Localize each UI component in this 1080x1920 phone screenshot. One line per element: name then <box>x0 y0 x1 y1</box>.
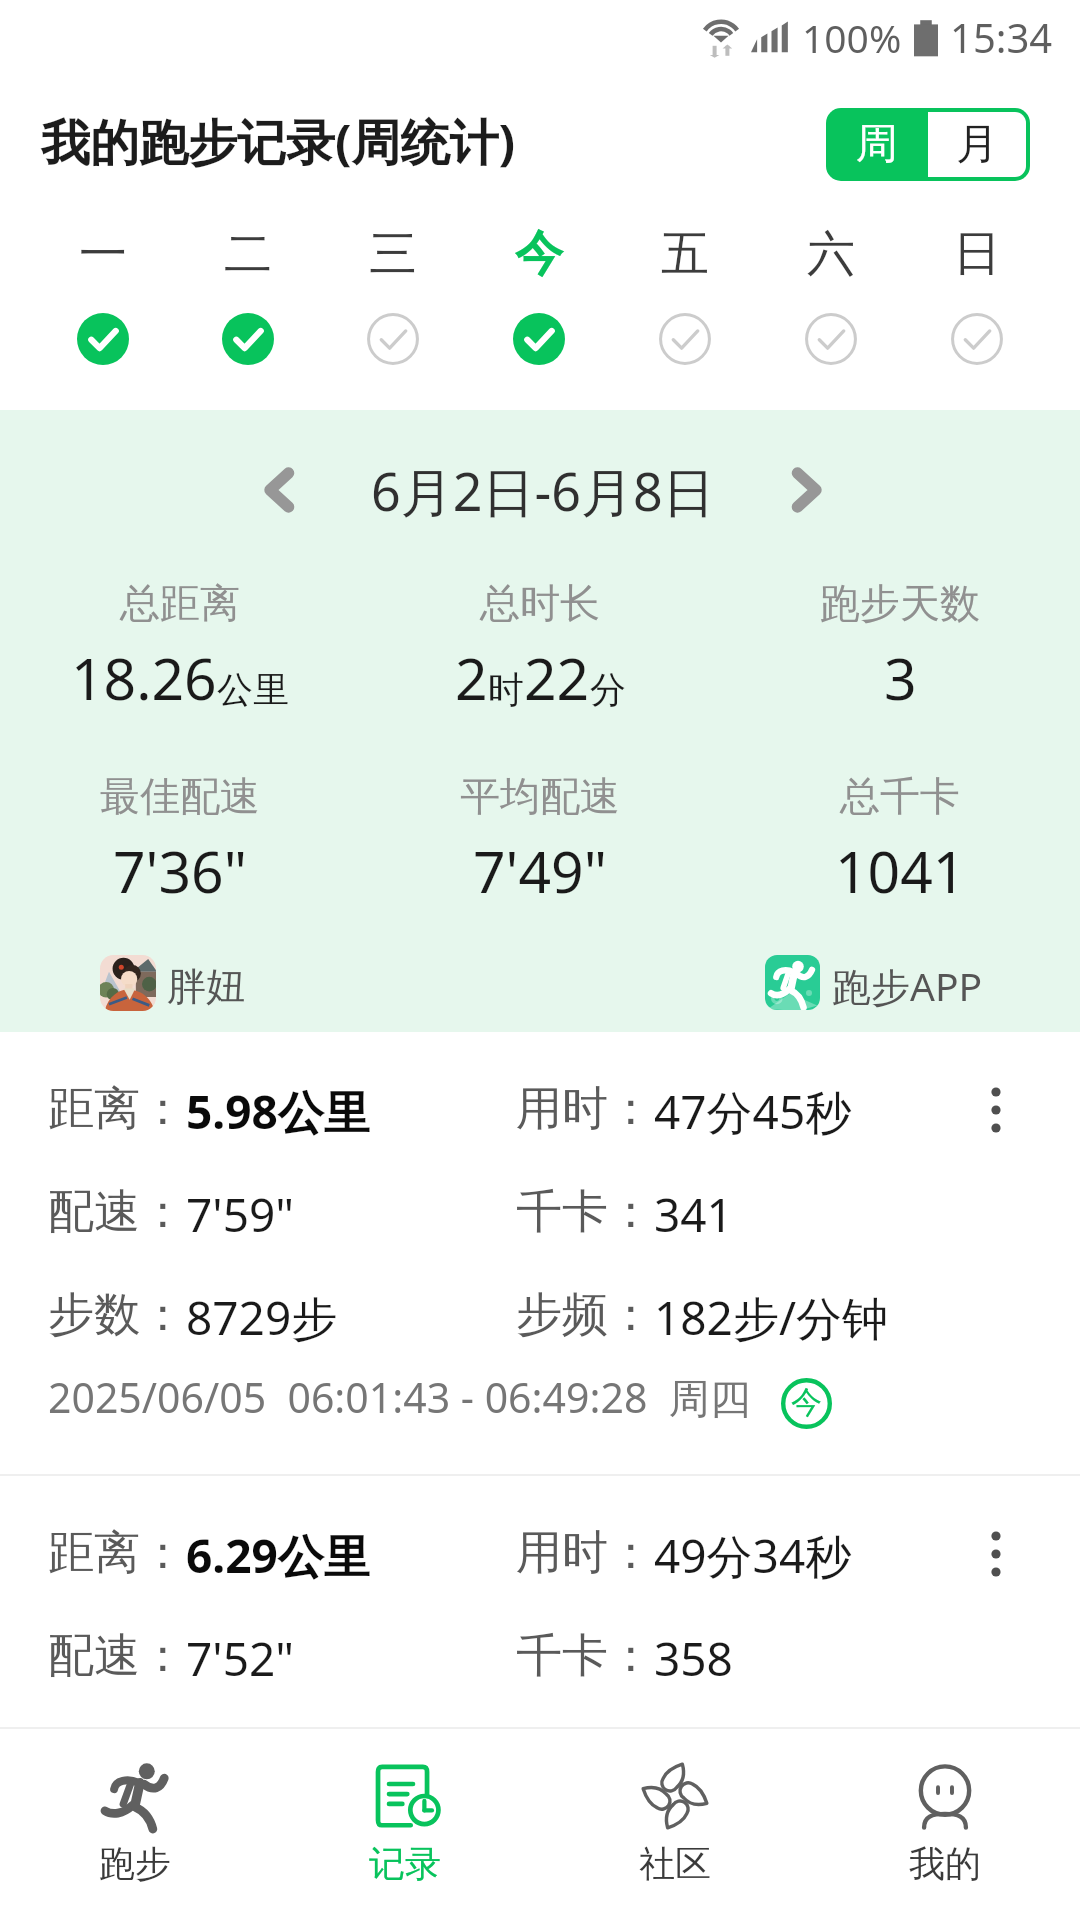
staticText: 7'49" <box>473 832 607 910</box>
staticText: 社区 <box>639 1841 711 1886</box>
button[interactable]: 社区 <box>540 1729 810 1920</box>
staticText: 配速： <box>48 1627 186 1685</box>
button[interactable]: Previous week <box>239 450 319 530</box>
staticText: 二 <box>224 224 272 284</box>
button[interactable]: 三 <box>320 211 466 391</box>
staticText: 7'36" <box>113 832 247 910</box>
button[interactable]: 五 <box>612 211 758 391</box>
button[interactable]: More options <box>968 1082 1024 1138</box>
staticText: 用时： <box>516 1524 654 1582</box>
staticText: 胖妞 <box>167 962 245 1011</box>
button[interactable]: 周 <box>826 108 928 181</box>
button[interactable]: 记录 <box>270 1729 540 1920</box>
button[interactable]: User avatar <box>100 955 156 1011</box>
button[interactable]: 月 <box>928 112 1026 177</box>
staticText: 5.98公里 <box>186 1080 370 1143</box>
button[interactable]: 六 <box>758 211 904 391</box>
button[interactable]: Next week <box>767 450 847 530</box>
staticText: 2 <box>455 639 488 717</box>
staticText: 15:34 <box>950 10 1053 64</box>
staticText: 今 <box>515 224 563 284</box>
staticText: 配速： <box>48 1183 186 1241</box>
button[interactable]: 今 <box>466 211 612 391</box>
staticText: 1041 <box>835 832 966 910</box>
staticText: 记录 <box>369 1841 441 1886</box>
staticText: 6月2日-6月8日 <box>371 455 715 526</box>
staticText: 跑步APP <box>832 959 983 1012</box>
staticText: 341 <box>654 1183 733 1246</box>
staticText: 2025/06/05 06:01:43 - 06:49:28 周四 <box>48 1369 751 1425</box>
staticText: 距离： <box>48 1080 186 1138</box>
staticText: 49分34秒 <box>654 1524 852 1587</box>
staticText: 步数： <box>48 1286 186 1344</box>
staticText: 步频： <box>516 1286 654 1344</box>
staticText: 3 <box>884 639 917 717</box>
staticText: 用时： <box>516 1080 654 1138</box>
button[interactable]: 日 <box>904 211 1050 391</box>
button[interactable]: More options <box>968 1526 1024 1582</box>
staticText: 47分45秒 <box>654 1080 852 1143</box>
staticText: 7'59" <box>186 1183 295 1246</box>
staticText: 8729步 <box>186 1286 338 1349</box>
staticText: 六 <box>807 224 855 284</box>
button[interactable]: 跑步 <box>0 1729 270 1920</box>
staticText: 总距离 <box>120 578 240 628</box>
staticText: 分 <box>590 667 626 712</box>
button[interactable]: 一 <box>30 211 175 391</box>
staticText: 一 <box>79 224 127 284</box>
staticText: 总时长 <box>480 578 600 628</box>
staticText: 千卡： <box>516 1183 654 1241</box>
staticText: 日 <box>953 224 1001 284</box>
staticText: 182步/分钟 <box>654 1286 889 1349</box>
staticText: 时 <box>488 667 524 712</box>
staticText: 7'52" <box>186 1627 295 1690</box>
button[interactable]: 二 <box>175 211 320 391</box>
staticText: 距离： <box>48 1524 186 1582</box>
staticText: 总千卡 <box>840 771 960 821</box>
staticText: 358 <box>654 1627 733 1690</box>
staticText: 平均配速 <box>460 771 620 821</box>
button[interactable]: 我的 <box>810 1729 1080 1920</box>
staticText: 月 <box>956 118 998 171</box>
staticText: 今 <box>791 1383 822 1422</box>
staticText: 18.26 <box>71 639 217 717</box>
staticText: 跑步天数 <box>820 578 980 628</box>
staticText: 6.29公里 <box>186 1524 370 1587</box>
staticText: 跑步 <box>99 1841 171 1886</box>
button[interactable]: 距离： <box>0 1032 1080 1474</box>
staticText: 五 <box>661 224 709 284</box>
button[interactable]: 距离： <box>0 1476 1080 1727</box>
staticText: 三 <box>369 224 417 284</box>
staticText: 周 <box>856 118 898 171</box>
staticText: 我的 <box>909 1841 981 1886</box>
staticText: 我的跑步记录(周统计) <box>41 108 516 175</box>
staticText: 最佳配速 <box>100 771 260 821</box>
staticText: 公里 <box>217 667 289 712</box>
staticText: 100% <box>802 11 902 64</box>
staticText: 千卡： <box>516 1627 654 1685</box>
staticText: 22 <box>524 639 590 717</box>
